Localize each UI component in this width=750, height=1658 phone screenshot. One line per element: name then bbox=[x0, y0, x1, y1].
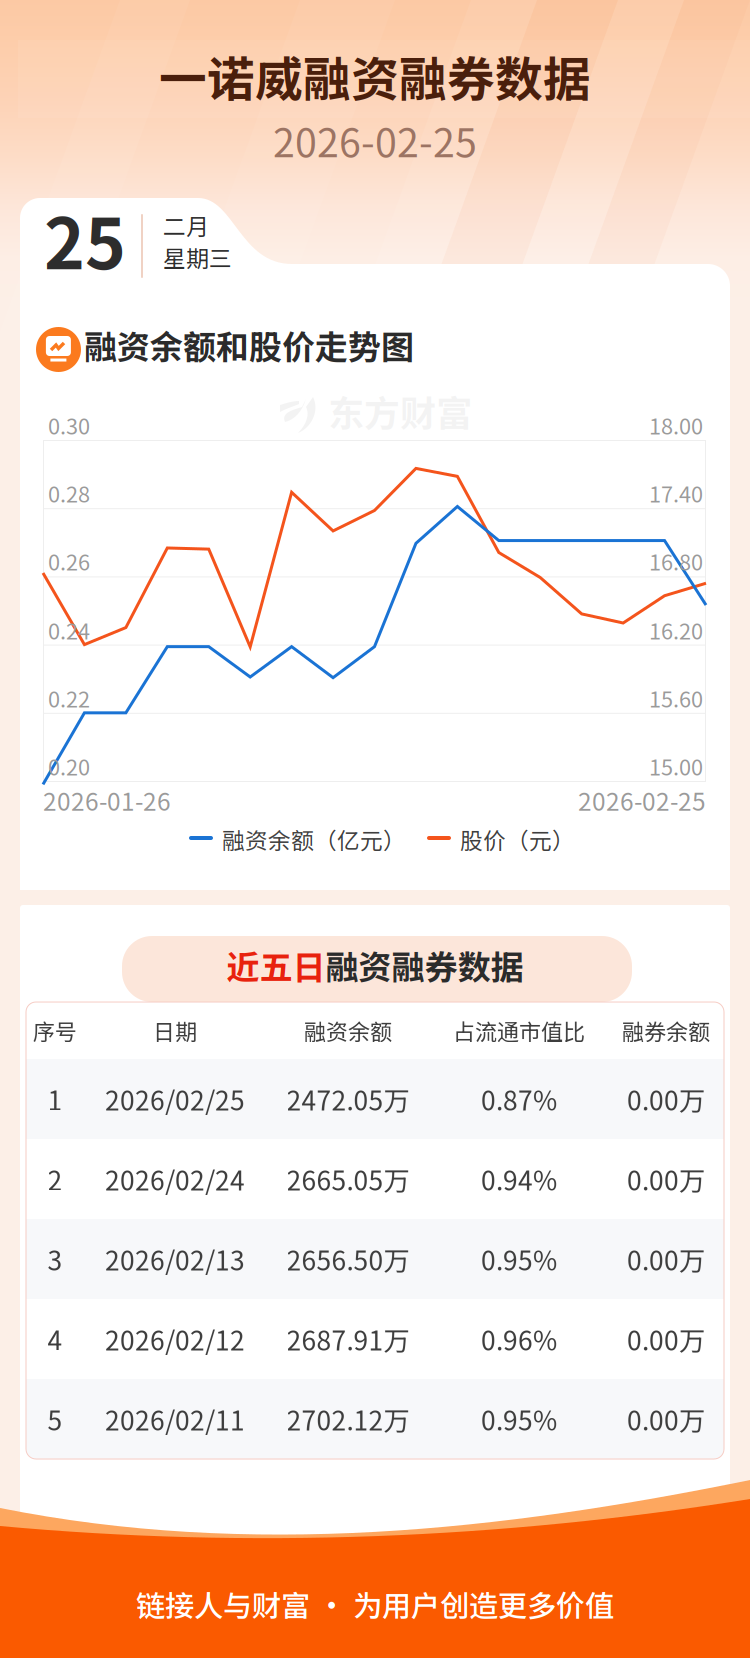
staticText: 25 bbox=[44, 189, 126, 289]
staticText: 0.00万 bbox=[627, 1400, 705, 1438]
staticText: 融资余额 bbox=[304, 1015, 392, 1046]
staticText: 2665.05万 bbox=[286, 1160, 409, 1198]
staticText: 2026-02-25 bbox=[578, 782, 706, 818]
staticText: 融券余额 bbox=[622, 1015, 710, 1046]
staticText: 2702.12万 bbox=[286, 1400, 409, 1438]
staticText: 15.00 bbox=[649, 750, 703, 782]
staticText: 2026/02/11 bbox=[105, 1400, 245, 1438]
staticText: 融资融券数据 bbox=[325, 941, 523, 989]
staticText: 0.00万 bbox=[627, 1080, 705, 1118]
staticText: 2 bbox=[47, 1160, 62, 1198]
staticText: 占流通市值比 bbox=[453, 1015, 585, 1046]
staticText: 二月 bbox=[163, 208, 209, 241]
staticText: 星期三 bbox=[163, 240, 232, 273]
staticText: 17.40 bbox=[649, 477, 703, 509]
staticText: 一诺威融资融券数据 bbox=[159, 41, 591, 110]
staticText: 5 bbox=[47, 1400, 62, 1438]
staticText: 0.26 bbox=[48, 545, 90, 577]
staticText: 2026-02-25 bbox=[273, 111, 477, 168]
staticText: 16.20 bbox=[649, 614, 703, 646]
staticText: 东方财富 bbox=[328, 385, 472, 437]
staticText: 4 bbox=[47, 1320, 62, 1358]
staticText: 2026-01-26 bbox=[43, 782, 171, 818]
staticText: 0.87% bbox=[481, 1080, 557, 1118]
staticText: 2026/02/25 bbox=[105, 1080, 245, 1118]
staticText: 0.96% bbox=[481, 1320, 557, 1358]
staticText: 3 bbox=[47, 1240, 62, 1278]
staticText: 融资余额和股价走势图 bbox=[84, 321, 414, 369]
staticText: 融资余额（亿元） bbox=[222, 823, 406, 855]
staticText: 0.24 bbox=[48, 614, 90, 646]
staticText: 16.80 bbox=[649, 545, 703, 577]
staticText: 2687.91万 bbox=[286, 1320, 409, 1358]
staticText: 0.30 bbox=[48, 409, 90, 441]
staticText: 2026/02/13 bbox=[105, 1240, 245, 1278]
staticText: 0.95% bbox=[481, 1240, 557, 1278]
staticText: 0.20 bbox=[48, 750, 90, 782]
staticText: 日期 bbox=[153, 1015, 197, 1046]
staticText: 0.00万 bbox=[627, 1320, 705, 1358]
staticText: 股价（元） bbox=[460, 823, 575, 855]
staticText: 1 bbox=[47, 1080, 62, 1118]
staticText: 15.60 bbox=[649, 682, 703, 714]
staticText: 0.00万 bbox=[627, 1240, 705, 1278]
staticText: 18.00 bbox=[649, 409, 703, 441]
staticText: 2656.50万 bbox=[286, 1240, 409, 1278]
staticText: 2472.05万 bbox=[286, 1080, 409, 1118]
staticText: 2026/02/24 bbox=[105, 1160, 245, 1198]
staticText: 0.00万 bbox=[627, 1160, 705, 1198]
staticText: 近五日 bbox=[226, 941, 325, 989]
staticText: 0.22 bbox=[48, 682, 90, 714]
staticText: 0.94% bbox=[481, 1160, 557, 1198]
staticText: 0.95% bbox=[481, 1400, 557, 1438]
staticText: 序号 bbox=[33, 1015, 77, 1046]
staticText: 链接人与财富 · 为用户创造更多价值 bbox=[136, 1583, 614, 1625]
staticText: 2026/02/12 bbox=[105, 1320, 245, 1358]
staticText: 0.28 bbox=[48, 477, 90, 509]
